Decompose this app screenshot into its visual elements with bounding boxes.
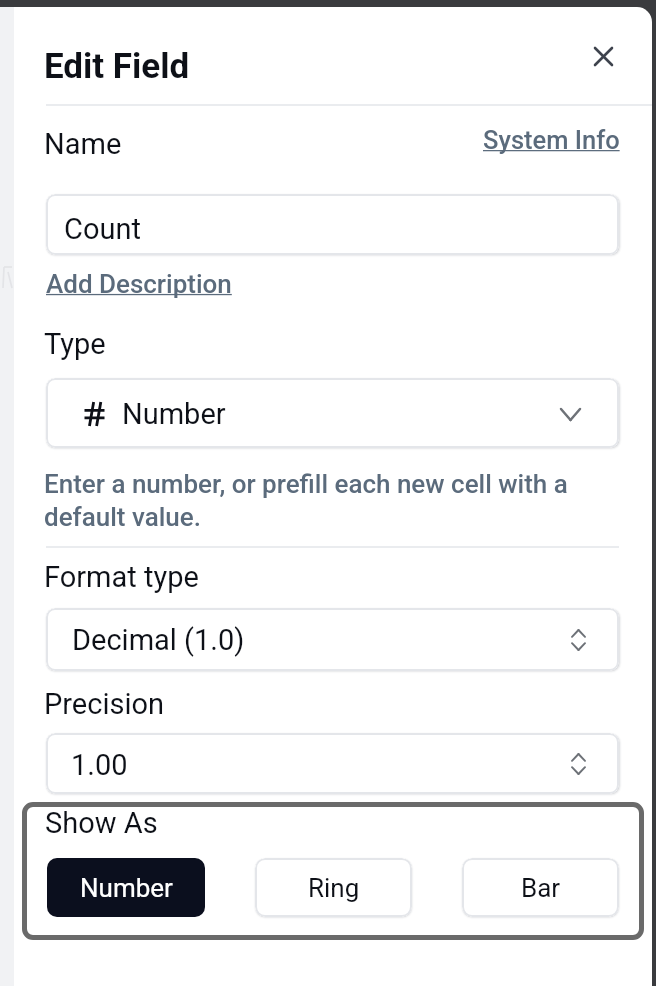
staticText: Name (44, 127, 122, 161)
staticText: Edit Field (44, 46, 190, 87)
staticText: 1.00 (71, 748, 128, 782)
staticText: Decimal (1.0) (72, 623, 245, 657)
staticText: Number (122, 397, 226, 431)
staticText: Format type (44, 560, 199, 594)
staticText: Type (44, 327, 106, 361)
staticText: Show As (45, 806, 158, 840)
staticText: Precision (44, 687, 165, 721)
staticText: Count (64, 212, 141, 246)
button[interactable]: Number (47, 858, 205, 917)
button[interactable]: Ring (255, 858, 412, 917)
button[interactable] (46, 378, 619, 448)
staticText: Number (80, 873, 173, 903)
button[interactable] (46, 608, 619, 671)
staticText: Ring (308, 873, 360, 903)
button[interactable] (46, 733, 619, 794)
button[interactable] (46, 194, 619, 255)
button[interactable]: Close (580, 33, 626, 79)
staticText: Enter a number, or prefill each new cell… (44, 469, 568, 532)
button[interactable]: Bar (462, 858, 619, 917)
staticText: Bar (521, 873, 561, 903)
